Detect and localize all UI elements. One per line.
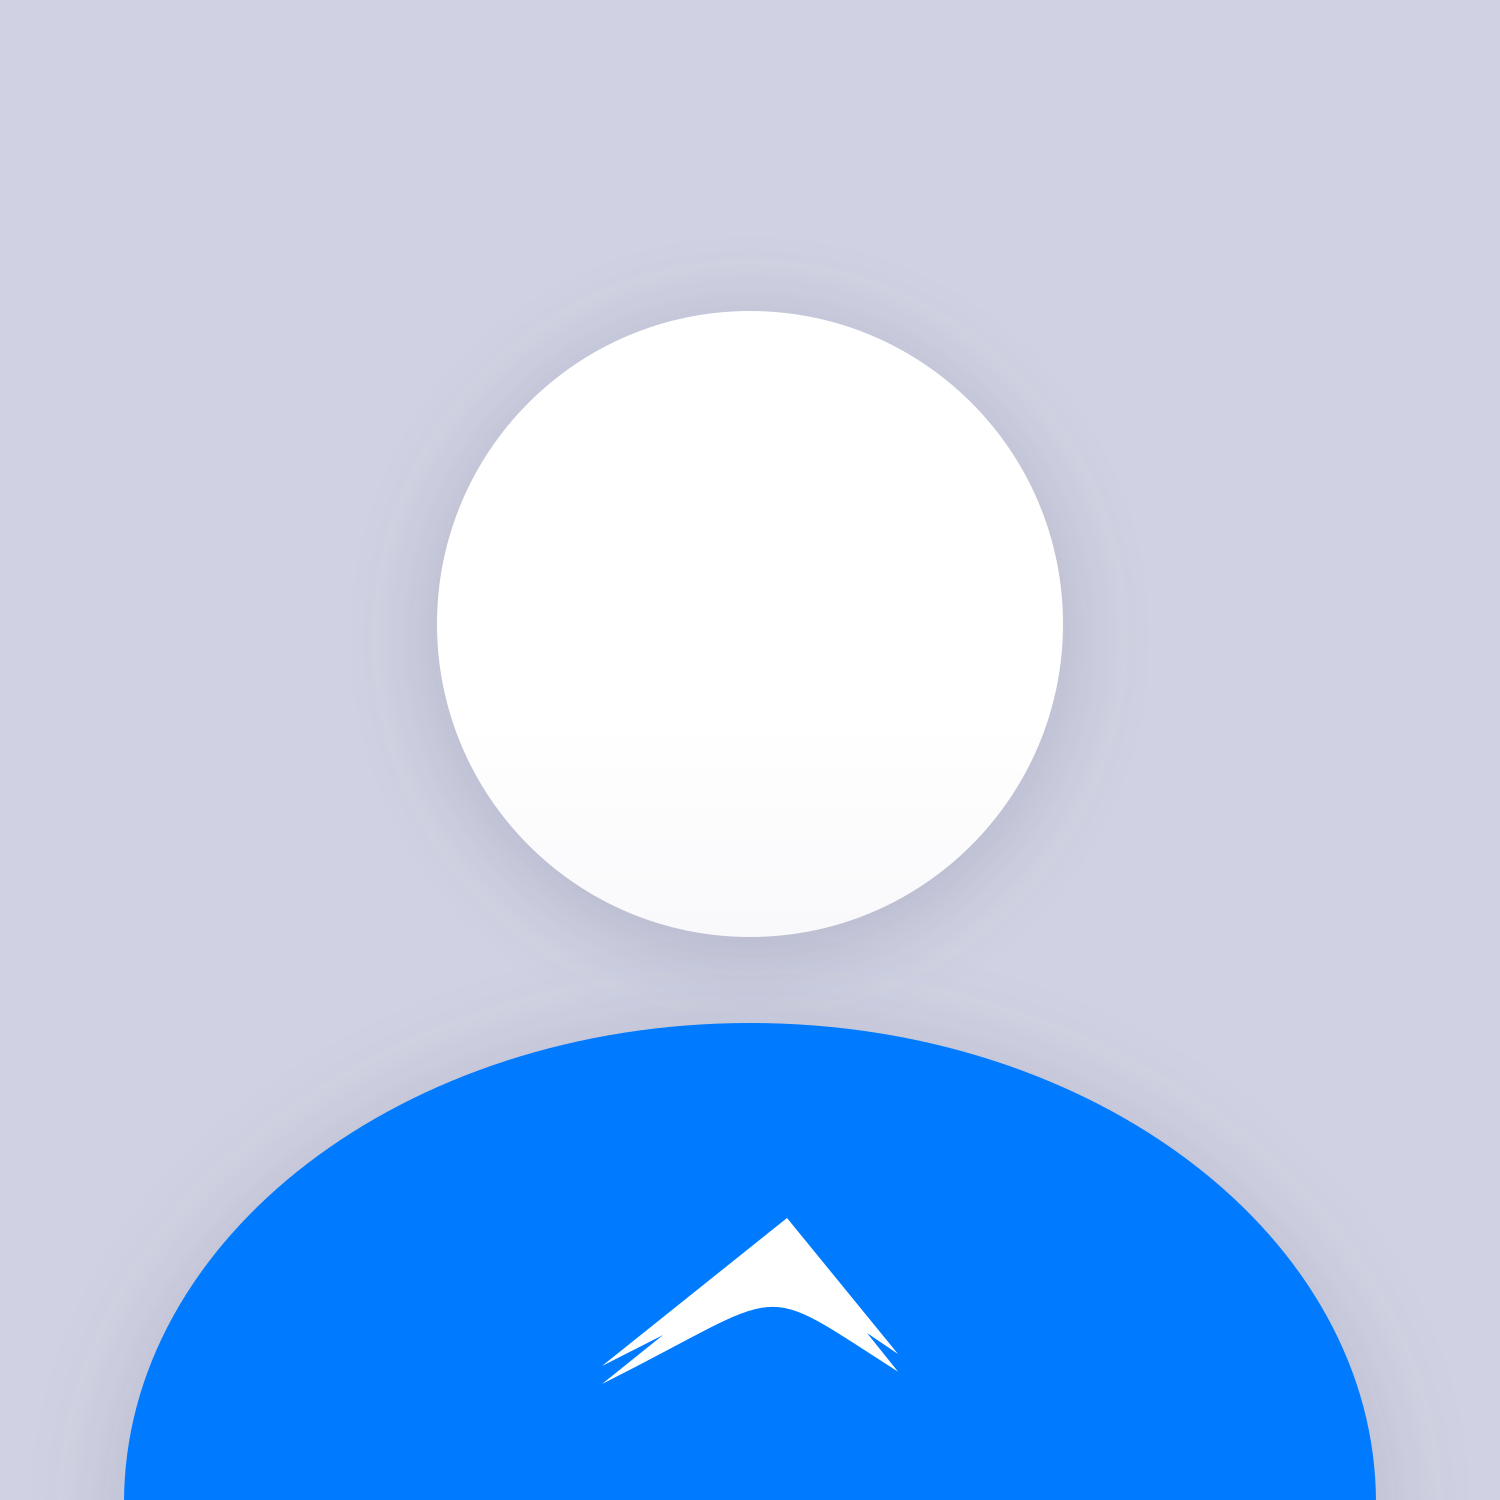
- button[interactable]: Profile photo: [0, 0, 1500, 1500]
